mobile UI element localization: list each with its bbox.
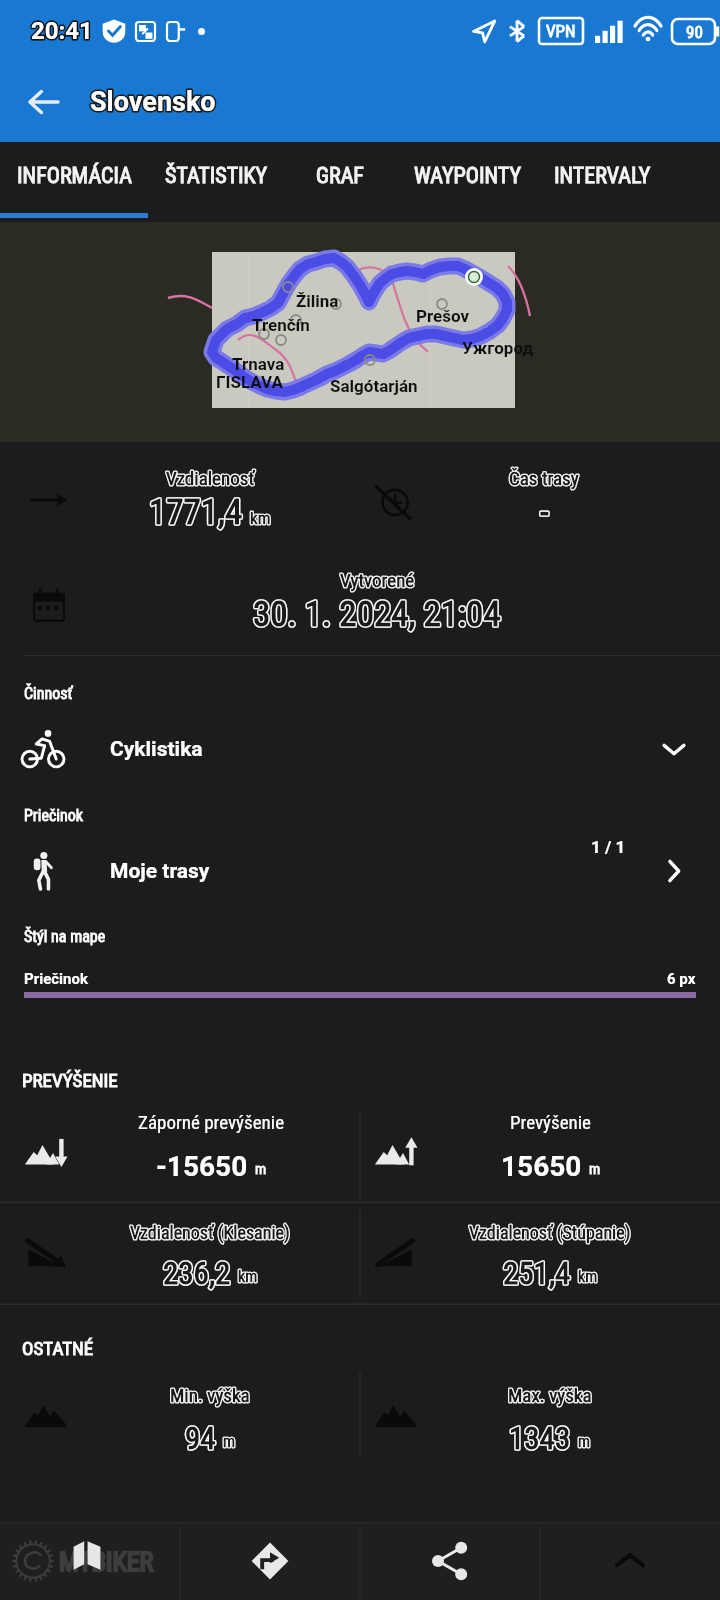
- staticText: km: [238, 1267, 258, 1286]
- staticText: m: [578, 1432, 591, 1451]
- button[interactable]: Moje trasy: [0, 825, 720, 917]
- staticText: PREVÝŠENIE: [22, 1069, 118, 1091]
- button[interactable]: Share: [360, 1522, 540, 1600]
- staticText: 1 / 1: [591, 837, 626, 857]
- staticText: Čas trasy: [509, 467, 579, 489]
- staticText: WAYPOINTY: [414, 163, 521, 189]
- staticText: -: [540, 492, 549, 533]
- button[interactable]: MTBiker: [0, 1522, 180, 1600]
- staticText: Trnava: [232, 354, 285, 374]
- staticText: Vytvorené: [340, 569, 415, 591]
- staticText: 1771,4: [149, 492, 243, 533]
- staticText: Trenčín: [252, 315, 310, 335]
- staticText: m: [255, 1160, 267, 1178]
- staticText: Čas trasy: [509, 467, 579, 489]
- staticText: 20:41: [31, 17, 93, 45]
- staticText: 1343: [509, 1420, 571, 1456]
- staticText: Prešov: [416, 306, 470, 326]
- staticText: km: [250, 508, 271, 528]
- staticText: Priečinok: [24, 806, 83, 825]
- staticText: Min. výška: [170, 1384, 250, 1406]
- staticText: Slovensko: [90, 86, 216, 118]
- button[interactable]: Navigate: [180, 1522, 360, 1600]
- staticText: m: [223, 1432, 236, 1451]
- staticText: Ужгород: [462, 338, 534, 358]
- staticText: m: [578, 1432, 591, 1451]
- staticText: Záporné prevýšenie: [138, 1111, 285, 1133]
- staticText: 1343: [509, 1420, 571, 1456]
- staticText: Vytvorené: [340, 569, 415, 591]
- staticText: 236,2: [163, 1255, 231, 1291]
- staticText: Slovensko: [90, 86, 216, 118]
- staticText: Cyklistika: [110, 737, 203, 762]
- button[interactable]: INFORMÁCIA: [0, 142, 148, 222]
- staticText: 20:41: [31, 17, 93, 45]
- staticText: INTERVALY: [554, 163, 651, 189]
- staticText: Vzdialenosť (Stúpanie): [469, 1222, 631, 1243]
- button[interactable]: Cyklistika: [0, 703, 720, 795]
- staticText: 251,4: [503, 1255, 571, 1291]
- staticText: Štýl na mape: [24, 927, 106, 946]
- staticText: 94: [185, 1420, 216, 1456]
- button[interactable]: Žilina: [0, 222, 720, 442]
- button[interactable]: WAYPOINTY: [395, 142, 539, 222]
- button[interactable]: GRAF: [285, 142, 395, 222]
- staticText: -: [540, 492, 549, 533]
- staticText: Prevýšenie: [510, 1111, 592, 1133]
- staticText: Salgótarján: [330, 376, 418, 396]
- staticText: Žilina: [296, 291, 339, 311]
- button[interactable]: Back: [16, 74, 72, 130]
- staticText: Moje trasy: [110, 859, 210, 884]
- staticText: 1771,4: [149, 492, 243, 533]
- staticText: Vzdialenosť: [166, 467, 255, 489]
- staticText: 6 px: [667, 970, 696, 988]
- staticText: Vzdialenosť (Klesanie): [130, 1222, 290, 1243]
- staticText: Max. výška: [508, 1384, 592, 1406]
- staticText: 30. 1. 2024, 21:04: [253, 594, 501, 635]
- staticText: 236,2: [163, 1255, 231, 1291]
- staticText: km: [238, 1267, 258, 1286]
- staticText: 30. 1. 2024, 21:04: [253, 594, 501, 635]
- staticText: m: [589, 1160, 601, 1178]
- button[interactable]: INTERVALY: [539, 142, 665, 222]
- staticText: km: [250, 508, 271, 528]
- staticText: 94: [185, 1420, 216, 1456]
- staticText: 15650: [501, 1150, 582, 1183]
- staticText: VPN: [546, 21, 576, 41]
- staticText: Vzdialenosť (Klesanie): [130, 1222, 290, 1243]
- staticText: m: [223, 1432, 236, 1451]
- staticText: Vzdialenosť (Stúpanie): [469, 1222, 631, 1243]
- staticText: INFORMÁCIA: [17, 163, 132, 189]
- staticText: ΓISLAVA: [216, 372, 284, 392]
- staticText: 251,4: [503, 1255, 571, 1291]
- staticText: OSTATNÉ: [22, 1337, 94, 1359]
- button[interactable]: Expand activity: [650, 725, 698, 773]
- staticText: -15650: [156, 1150, 248, 1183]
- staticText: GRAF: [316, 163, 364, 189]
- staticText: Vzdialenosť: [166, 467, 255, 489]
- staticText: ŠTATISTIKY: [165, 163, 268, 189]
- staticText: km: [578, 1267, 598, 1286]
- staticText: Min. výška: [170, 1384, 250, 1406]
- staticText: km: [578, 1267, 598, 1286]
- staticText: Priečinok: [24, 970, 88, 988]
- button[interactable]: ŠTATISTIKY: [148, 142, 285, 222]
- staticText: 90: [686, 22, 703, 42]
- staticText: MTBIKER: [59, 1547, 154, 1577]
- staticText: Max. výška: [508, 1384, 592, 1406]
- staticText: Činnosť: [24, 684, 73, 703]
